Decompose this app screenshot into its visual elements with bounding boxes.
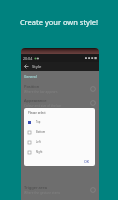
staticText: Position: [24, 84, 40, 89]
staticText: Top: [36, 120, 41, 124]
staticText: Where the gesture starts: [24, 191, 61, 195]
staticText: Appearance: [24, 98, 47, 103]
button[interactable]: Position: [21, 82, 99, 96]
staticText: OK: [84, 159, 90, 164]
staticText: General: [24, 74, 37, 79]
staticText: Left: [36, 140, 41, 144]
button[interactable]: Top: [24, 117, 95, 127]
button[interactable]: Left: [24, 137, 95, 147]
staticText: Create your own style!: [0, 17, 118, 27]
staticText: Where the bar appears: [24, 90, 58, 94]
button[interactable]: Trigger area: [21, 183, 99, 197]
staticText: Style: [32, 64, 42, 70]
button[interactable]: Appearance: [21, 96, 99, 110]
button[interactable]: Right: [24, 147, 95, 157]
button[interactable]: Bottom: [24, 127, 95, 137]
staticText: Trigger area: [24, 185, 47, 190]
staticText: Please select: [28, 111, 46, 115]
staticText: 20:04: [23, 56, 33, 61]
staticText: Right: [36, 150, 43, 154]
staticText: Colour and size of the bar: [24, 104, 62, 108]
button[interactable]: Back: [23, 63, 30, 70]
button[interactable]: OK: [82, 158, 92, 165]
staticText: Bottom: [36, 130, 46, 134]
